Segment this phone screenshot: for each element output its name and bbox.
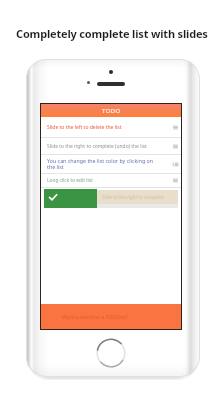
staticText: Slide to the right to complete <box>102 194 164 200</box>
other: List options <box>172 143 179 150</box>
staticText: Long click to edit list <box>47 177 161 184</box>
other: List options <box>172 124 179 131</box>
button[interactable]: TODO <box>41 104 181 117</box>
other: List options <box>172 161 179 168</box>
button[interactable]: Slide to the right to complete <box>44 189 178 208</box>
button[interactable]: You can change the list color by clickin… <box>41 155 181 173</box>
button[interactable]: Slide to the right to complete (undo) th… <box>41 138 181 154</box>
button[interactable]: Long click to edit list <box>41 174 181 187</box>
staticText: Completely complete list with slides <box>16 26 208 41</box>
staticText: TODO <box>102 107 121 115</box>
button[interactable]: Slide to the left to delete the list <box>41 117 181 137</box>
other: List options <box>172 177 179 184</box>
staticText: You can change the list color by clickin… <box>47 157 161 171</box>
staticText: Slide to the left to delete the list <box>47 124 161 131</box>
other: Home <box>96 338 126 368</box>
staticText: Slide to the right to complete (undo) th… <box>47 143 161 150</box>
staticText: Wanna become a TODOist? <box>62 313 129 320</box>
